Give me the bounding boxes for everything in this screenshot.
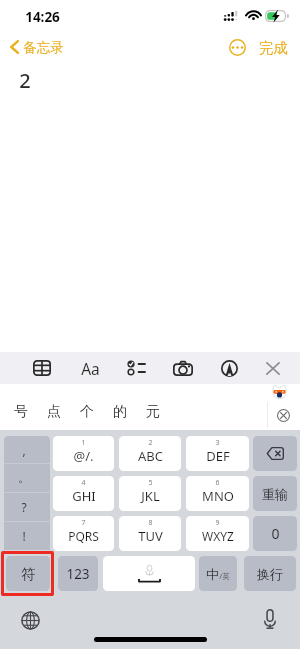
button[interactable]: 完成	[259, 39, 288, 57]
staticText: 4	[81, 478, 86, 488]
button[interactable]: 元	[139, 384, 167, 430]
staticText: 6	[215, 478, 220, 488]
staticText: 个	[80, 403, 94, 421]
button[interactable]: 4	[53, 476, 114, 511]
button[interactable]: ?	[4, 493, 50, 521]
staticText: 7	[81, 518, 86, 528]
button[interactable]: 个	[73, 384, 101, 430]
button[interactable]: Clear input	[277, 409, 290, 422]
button[interactable]: 备忘录	[10, 36, 64, 58]
staticText: 8	[148, 518, 153, 528]
staticText: 中	[206, 566, 219, 582]
staticText: ?	[21, 499, 27, 515]
staticText: DEF	[206, 447, 230, 465]
button[interactable]: Camera	[171, 352, 195, 384]
staticText: !	[22, 528, 26, 544]
staticText: 重输	[262, 486, 288, 502]
button[interactable]: 3	[186, 436, 249, 471]
staticText: 3	[215, 438, 220, 448]
staticText: 9	[215, 518, 220, 528]
button[interactable]: Text format	[78, 352, 102, 384]
button[interactable]: 6	[186, 476, 249, 511]
button[interactable]: 1	[53, 436, 114, 471]
button[interactable]: 123	[58, 556, 98, 591]
staticText: 5	[148, 478, 153, 488]
staticText: PQRS	[68, 528, 99, 544]
button[interactable]: Close keyboard	[261, 352, 285, 384]
button[interactable]: 换行	[244, 556, 296, 591]
button[interactable]: Switch keyboard	[21, 611, 40, 630]
staticText: 14:26	[25, 8, 60, 26]
staticText: 的	[113, 403, 127, 421]
staticText: 2	[19, 67, 31, 94]
button[interactable]: 号	[7, 384, 35, 430]
staticText: 1	[81, 438, 86, 448]
button[interactable]: Dictation	[263, 609, 277, 629]
staticText: 备忘录	[23, 39, 64, 56]
button[interactable]: 2	[119, 436, 181, 471]
button[interactable]: !	[4, 522, 50, 550]
button[interactable]: 8	[119, 516, 181, 551]
button[interactable]: 0	[253, 516, 297, 551]
button[interactable]: Space	[103, 556, 195, 591]
staticText: /英	[219, 571, 230, 581]
staticText: 元	[146, 403, 160, 421]
staticText: 符	[21, 565, 36, 583]
button[interactable]: Insert table	[30, 352, 54, 384]
button[interactable]: 点	[40, 384, 68, 430]
staticText: 123	[66, 565, 90, 583]
staticText: JKL	[141, 487, 160, 505]
staticText: Aa	[81, 358, 100, 379]
button[interactable]: More options	[229, 39, 246, 56]
staticText: TUV	[138, 527, 163, 545]
staticText: GHI	[72, 487, 96, 505]
staticText: 点	[47, 403, 61, 421]
staticText: WXYZ	[202, 528, 234, 544]
button[interactable]: 5	[119, 476, 181, 511]
staticText: 。	[18, 470, 30, 485]
button[interactable]: Delete	[253, 436, 297, 471]
button[interactable]: 9	[186, 516, 249, 551]
staticText: @/.	[73, 447, 94, 465]
button[interactable]: 7	[53, 516, 114, 551]
button[interactable]: 重输	[253, 476, 297, 511]
button[interactable]: 符	[6, 556, 50, 591]
button[interactable]: 中	[199, 556, 237, 591]
staticText: 号	[14, 403, 28, 421]
button[interactable]: ,	[4, 436, 50, 463]
staticText: 换行	[257, 566, 283, 582]
button[interactable]: 的	[106, 384, 134, 430]
staticText: 0	[271, 524, 280, 543]
button[interactable]: 。	[4, 464, 50, 492]
button[interactable]: Markup	[217, 352, 241, 384]
staticText: 2	[148, 438, 153, 448]
staticText: MNO	[202, 487, 234, 505]
staticText: ABC	[138, 447, 163, 465]
staticText: ,	[22, 442, 26, 458]
button[interactable]: Checklist	[124, 352, 148, 384]
